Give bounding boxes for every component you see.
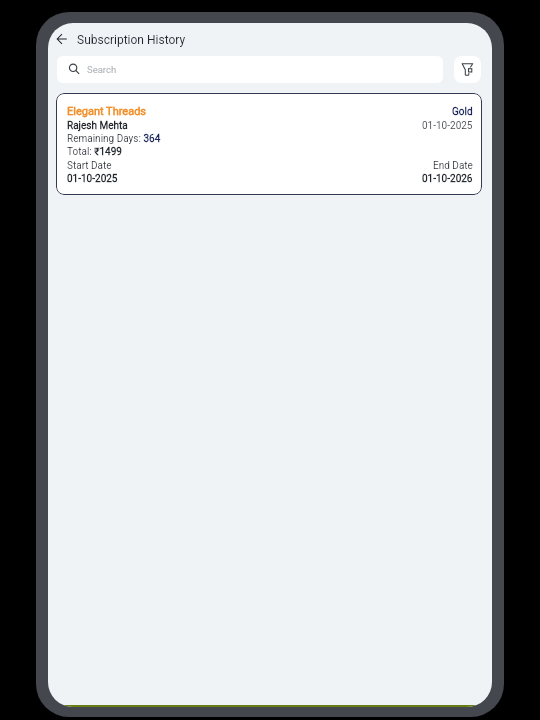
staticText: Rajesh Mehta [67, 120, 128, 132]
button[interactable]: Elegant Threads [56, 93, 482, 195]
button[interactable]: Back [51, 28, 73, 50]
staticText: Subscription History [77, 33, 186, 47]
staticText: Elegant Threads [67, 105, 147, 118]
staticText: Gold [452, 106, 473, 118]
staticText: Start Date [67, 160, 112, 172]
staticText: Remaining Days: 364 [67, 133, 161, 145]
button[interactable]: Search [57, 56, 443, 83]
button[interactable]: Filter [454, 56, 481, 83]
staticText: 01-10-2025 [422, 120, 473, 132]
staticText: End Date [433, 160, 473, 172]
staticText: Total: ₹1499 [67, 146, 122, 158]
staticText: Search [87, 64, 117, 75]
staticText: 01-10-2026 [422, 173, 473, 185]
staticText: 01-10-2025 [67, 173, 118, 185]
